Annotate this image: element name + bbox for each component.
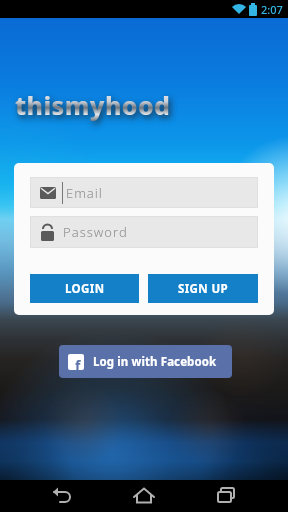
staticText: f [75,356,81,370]
staticText: LOGIN [65,281,105,297]
button[interactable] [208,480,244,512]
button[interactable]: Password [30,216,258,248]
staticText: 2:07 [261,2,283,17]
button[interactable] [126,480,162,512]
button[interactable]: f [59,345,232,378]
button[interactable]: LOGIN [30,274,139,303]
button[interactable]: Email [30,177,258,208]
staticText: SIGN UP [178,281,229,297]
button[interactable] [44,480,80,512]
staticText: Password [63,223,128,241]
button[interactable]: SIGN UP [148,274,258,303]
staticText: Email [66,184,103,202]
staticText: Log in with Facebook [93,354,217,370]
staticText: thismyhood [15,88,171,122]
